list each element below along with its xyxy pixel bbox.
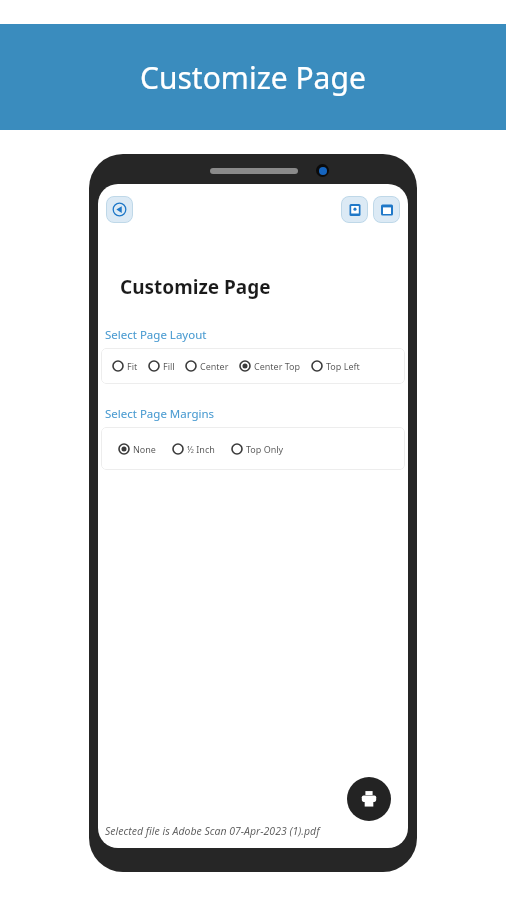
staticText: None	[133, 443, 156, 455]
button[interactable]: Top Only	[230, 439, 285, 459]
button[interactable]: Back	[106, 196, 133, 223]
button[interactable]: Fill	[147, 356, 176, 376]
staticText: Center	[200, 360, 229, 372]
staticText: Customize Page	[140, 57, 366, 98]
button[interactable]: Center Top	[238, 356, 302, 376]
button[interactable]: Help	[341, 196, 368, 223]
staticText: Select Page Layout	[105, 327, 207, 343]
staticText: Fill	[163, 360, 175, 372]
button[interactable]: Fit	[111, 356, 139, 376]
button[interactable]: None	[117, 439, 157, 459]
button[interactable]: Print	[347, 777, 391, 821]
button[interactable]: Center	[184, 356, 230, 376]
button[interactable]: Top Left	[310, 356, 361, 376]
staticText: Fit	[127, 360, 138, 372]
staticText: Top Only	[246, 443, 284, 455]
staticText: ½ Inch	[187, 443, 215, 455]
staticText: Center Top	[254, 360, 301, 372]
staticText: Select Page Margins	[105, 406, 215, 422]
staticText: Top Left	[326, 360, 360, 372]
button[interactable]: Settings	[373, 196, 400, 223]
staticText: Selected file is Adobe Scan 07-Apr-2023 …	[105, 824, 320, 838]
staticText: Customize Page	[120, 274, 271, 300]
button[interactable]: ½ Inch	[171, 439, 216, 459]
